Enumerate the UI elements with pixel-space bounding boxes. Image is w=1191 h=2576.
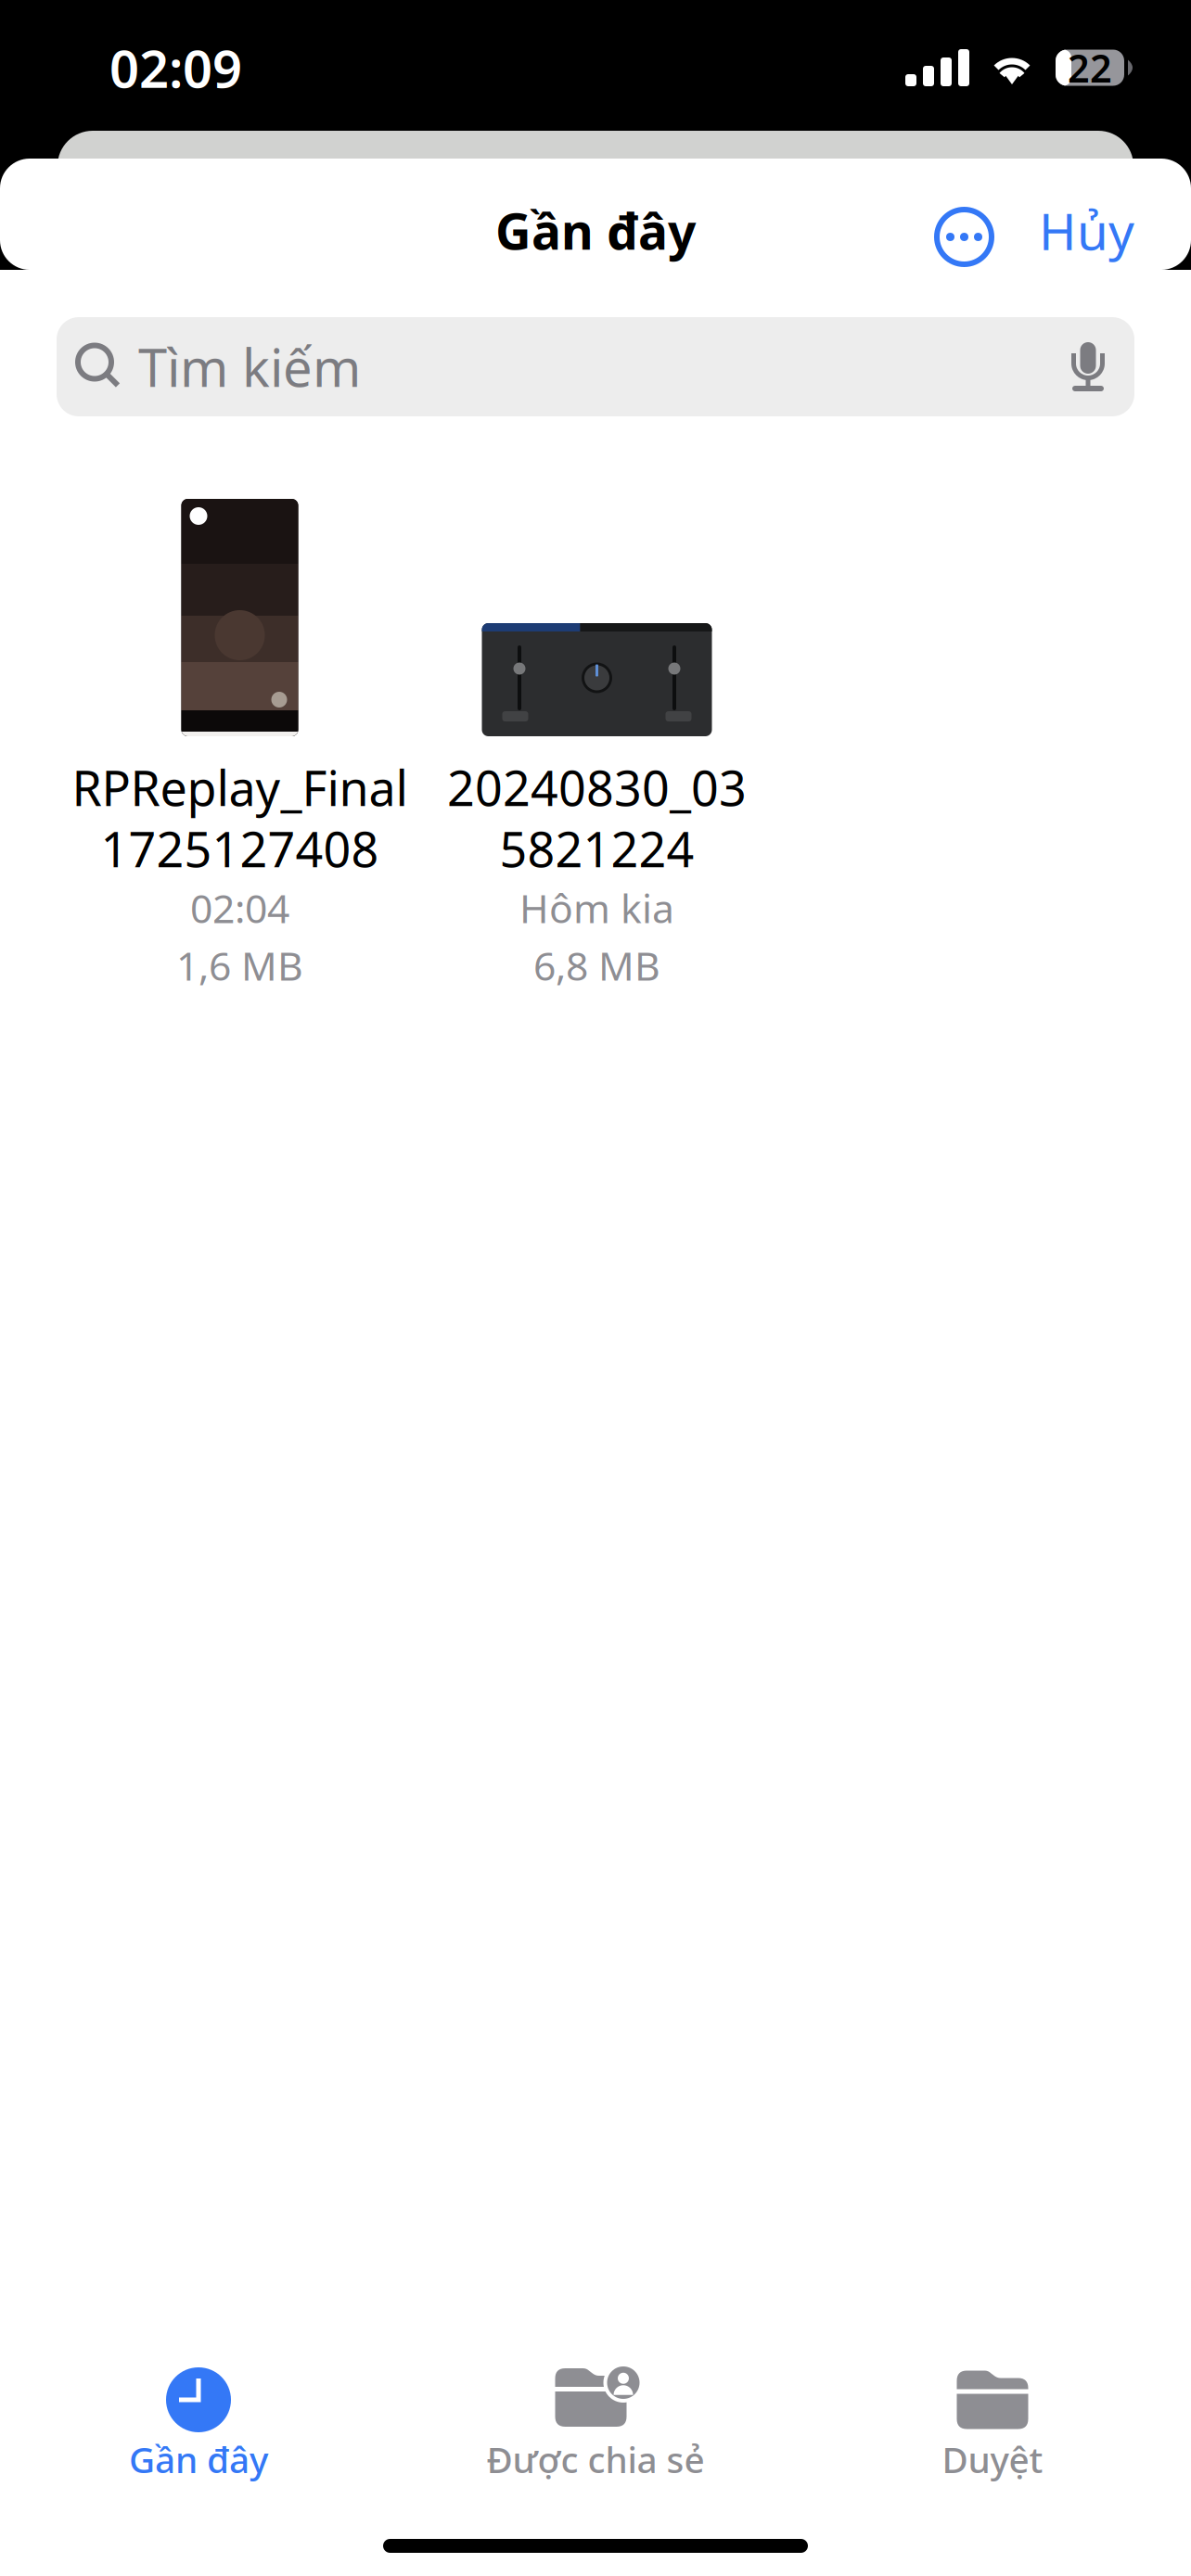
button[interactable]: Gần đây xyxy=(0,2366,397,2474)
staticText: Gần đây xyxy=(129,2435,268,2483)
staticText: 02:09 xyxy=(109,33,242,102)
staticText: Tìm kiếm xyxy=(138,332,361,401)
button[interactable]: 20240830_03 xyxy=(418,499,775,994)
button[interactable]: Hủy xyxy=(1024,182,1151,279)
button[interactable]: Được chia sẻ xyxy=(397,2366,794,2474)
staticText: RPReplay_Final xyxy=(72,755,408,819)
staticText: 02:04 xyxy=(190,882,289,934)
button[interactable]: Duyệt xyxy=(794,2366,1191,2474)
staticText: 22 xyxy=(1068,42,1112,93)
staticText: Duyệt xyxy=(942,2435,1043,2483)
staticText: 20240830_03 xyxy=(447,755,747,819)
staticText: Hôm kia xyxy=(519,882,674,934)
staticText: 1,6 MB xyxy=(176,939,303,992)
staticText: 6,8 MB xyxy=(533,939,660,992)
button[interactable]: RPReplay_Final xyxy=(61,499,418,994)
staticText: 1725127408 xyxy=(101,816,379,881)
button[interactable]: Thêm xyxy=(917,185,1024,275)
button[interactable]: Tìm kiếm xyxy=(57,317,1134,416)
staticText: Hủy xyxy=(1039,197,1134,264)
staticText: 5821224 xyxy=(499,816,694,881)
staticText: Được chia sẻ xyxy=(487,2435,704,2483)
staticText: Gần đây xyxy=(495,198,696,263)
